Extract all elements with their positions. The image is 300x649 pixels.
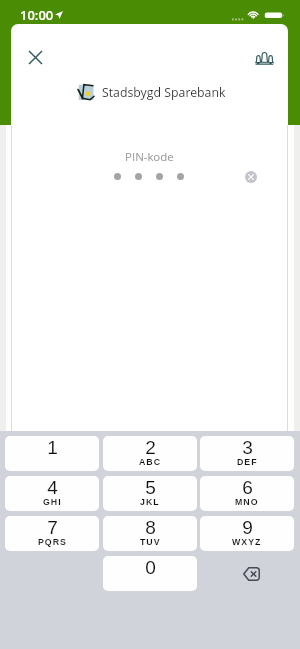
button[interactable]: Users (244, 37, 284, 77)
staticText: WXYZ (232, 537, 262, 547)
button[interactable]: 1 (5, 436, 99, 471)
staticText: DEF (237, 457, 258, 467)
staticText: 3 (242, 437, 253, 458)
button[interactable]: 6 (200, 476, 294, 511)
button[interactable]: Close (15, 37, 55, 77)
staticText: 7 (47, 517, 58, 538)
button[interactable]: 4 (5, 476, 99, 511)
staticText: 1 (47, 437, 58, 458)
button[interactable]: 2 (103, 436, 197, 471)
staticText: ABC (139, 457, 162, 467)
button[interactable]: Clear (239, 165, 263, 189)
staticText: Stadsbygd Sparebank (102, 84, 226, 101)
staticText: 5 (145, 477, 156, 498)
button[interactable]: 8 (103, 516, 197, 551)
staticText: 8 (145, 517, 156, 538)
staticText: PQRS (38, 537, 67, 547)
button[interactable]: 9 (200, 516, 294, 551)
staticText: 4 (47, 477, 58, 498)
staticText: 9 (242, 517, 253, 538)
button[interactable]: 3 (200, 436, 294, 471)
staticText: JKL (140, 497, 160, 507)
staticText: 0 (145, 557, 156, 578)
button[interactable]: Backspace (200, 556, 294, 591)
staticText: 6 (242, 477, 253, 498)
button[interactable]: 7 (5, 516, 99, 551)
staticText: MNO (235, 497, 259, 507)
staticText: TUV (140, 537, 161, 547)
staticText: 2 (145, 437, 156, 458)
staticText: PIN-kode (125, 149, 174, 165)
staticText: 10:00 (20, 6, 54, 24)
button[interactable]: 5 (103, 476, 197, 511)
button[interactable]: 0 (103, 556, 197, 591)
staticText: GHI (43, 497, 62, 507)
